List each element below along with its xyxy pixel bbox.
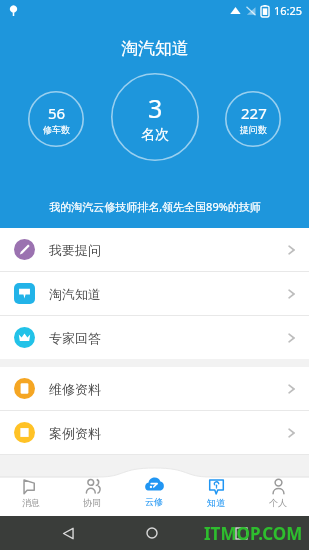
staticText: 56	[48, 103, 66, 123]
staticText: 我要提问	[49, 242, 101, 258]
button[interactable]: 淘汽知道	[0, 272, 309, 315]
other: Recent apps	[236, 528, 247, 539]
staticText: 淘汽知道	[49, 286, 101, 302]
staticText: 我的淘汽云修技师排名,领先全国89%的技师	[49, 199, 261, 214]
button[interactable]: 云修	[123, 468, 185, 516]
staticText: 云修	[145, 496, 163, 507]
button[interactable]: 个人	[247, 468, 309, 516]
staticText: 16:25	[274, 3, 303, 18]
staticText: 专家回答	[49, 330, 101, 346]
staticText: 知道	[207, 497, 225, 508]
staticText: 修车数	[43, 124, 70, 135]
staticText: 3	[148, 91, 163, 125]
staticText: 协同	[83, 497, 101, 508]
button[interactable]: 案例资料	[0, 411, 309, 454]
button[interactable]: 维修资料	[0, 367, 309, 410]
button[interactable]: 我要提问	[0, 228, 309, 271]
staticText: ITMOP.COM	[204, 522, 303, 545]
staticText: 案例资料	[49, 425, 101, 441]
other: Home	[146, 527, 158, 539]
staticText: 维修资料	[49, 381, 101, 397]
other: Back	[62, 527, 75, 540]
button[interactable]: 专家回答	[0, 316, 309, 359]
staticText: 消息	[22, 497, 40, 508]
staticText: 淘汽知道	[121, 38, 189, 59]
staticText: 个人	[269, 497, 287, 508]
staticText: 名次	[141, 126, 169, 144]
button[interactable]: 协同	[61, 468, 123, 516]
button[interactable]: 知道	[185, 468, 247, 516]
staticText: 227	[241, 103, 267, 123]
staticText: 提问数	[240, 124, 267, 135]
button[interactable]: 消息	[0, 468, 61, 516]
